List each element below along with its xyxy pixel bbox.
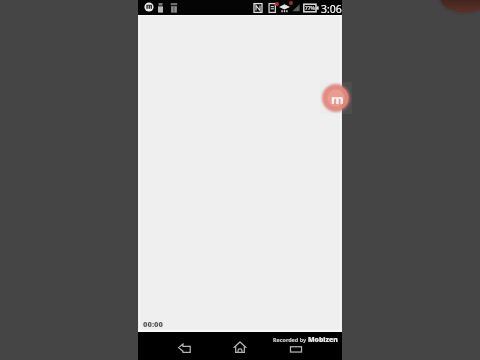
button[interactable]: Home — [227, 334, 253, 360]
staticText: 00:00 — [143, 319, 163, 329]
staticText: m — [331, 90, 344, 108]
button[interactable]: Recent apps — [283, 334, 309, 360]
button[interactable]: Mobizen recorder — [320, 82, 352, 114]
staticText: Mobizen — [308, 335, 338, 344]
button[interactable]: Back — [171, 335, 197, 360]
staticText: 3:06 — [321, 2, 342, 16]
button[interactable]: Recording timer — [140, 318, 166, 330]
staticText: 77% — [305, 5, 315, 11]
staticText: Recorded by — [273, 336, 308, 343]
